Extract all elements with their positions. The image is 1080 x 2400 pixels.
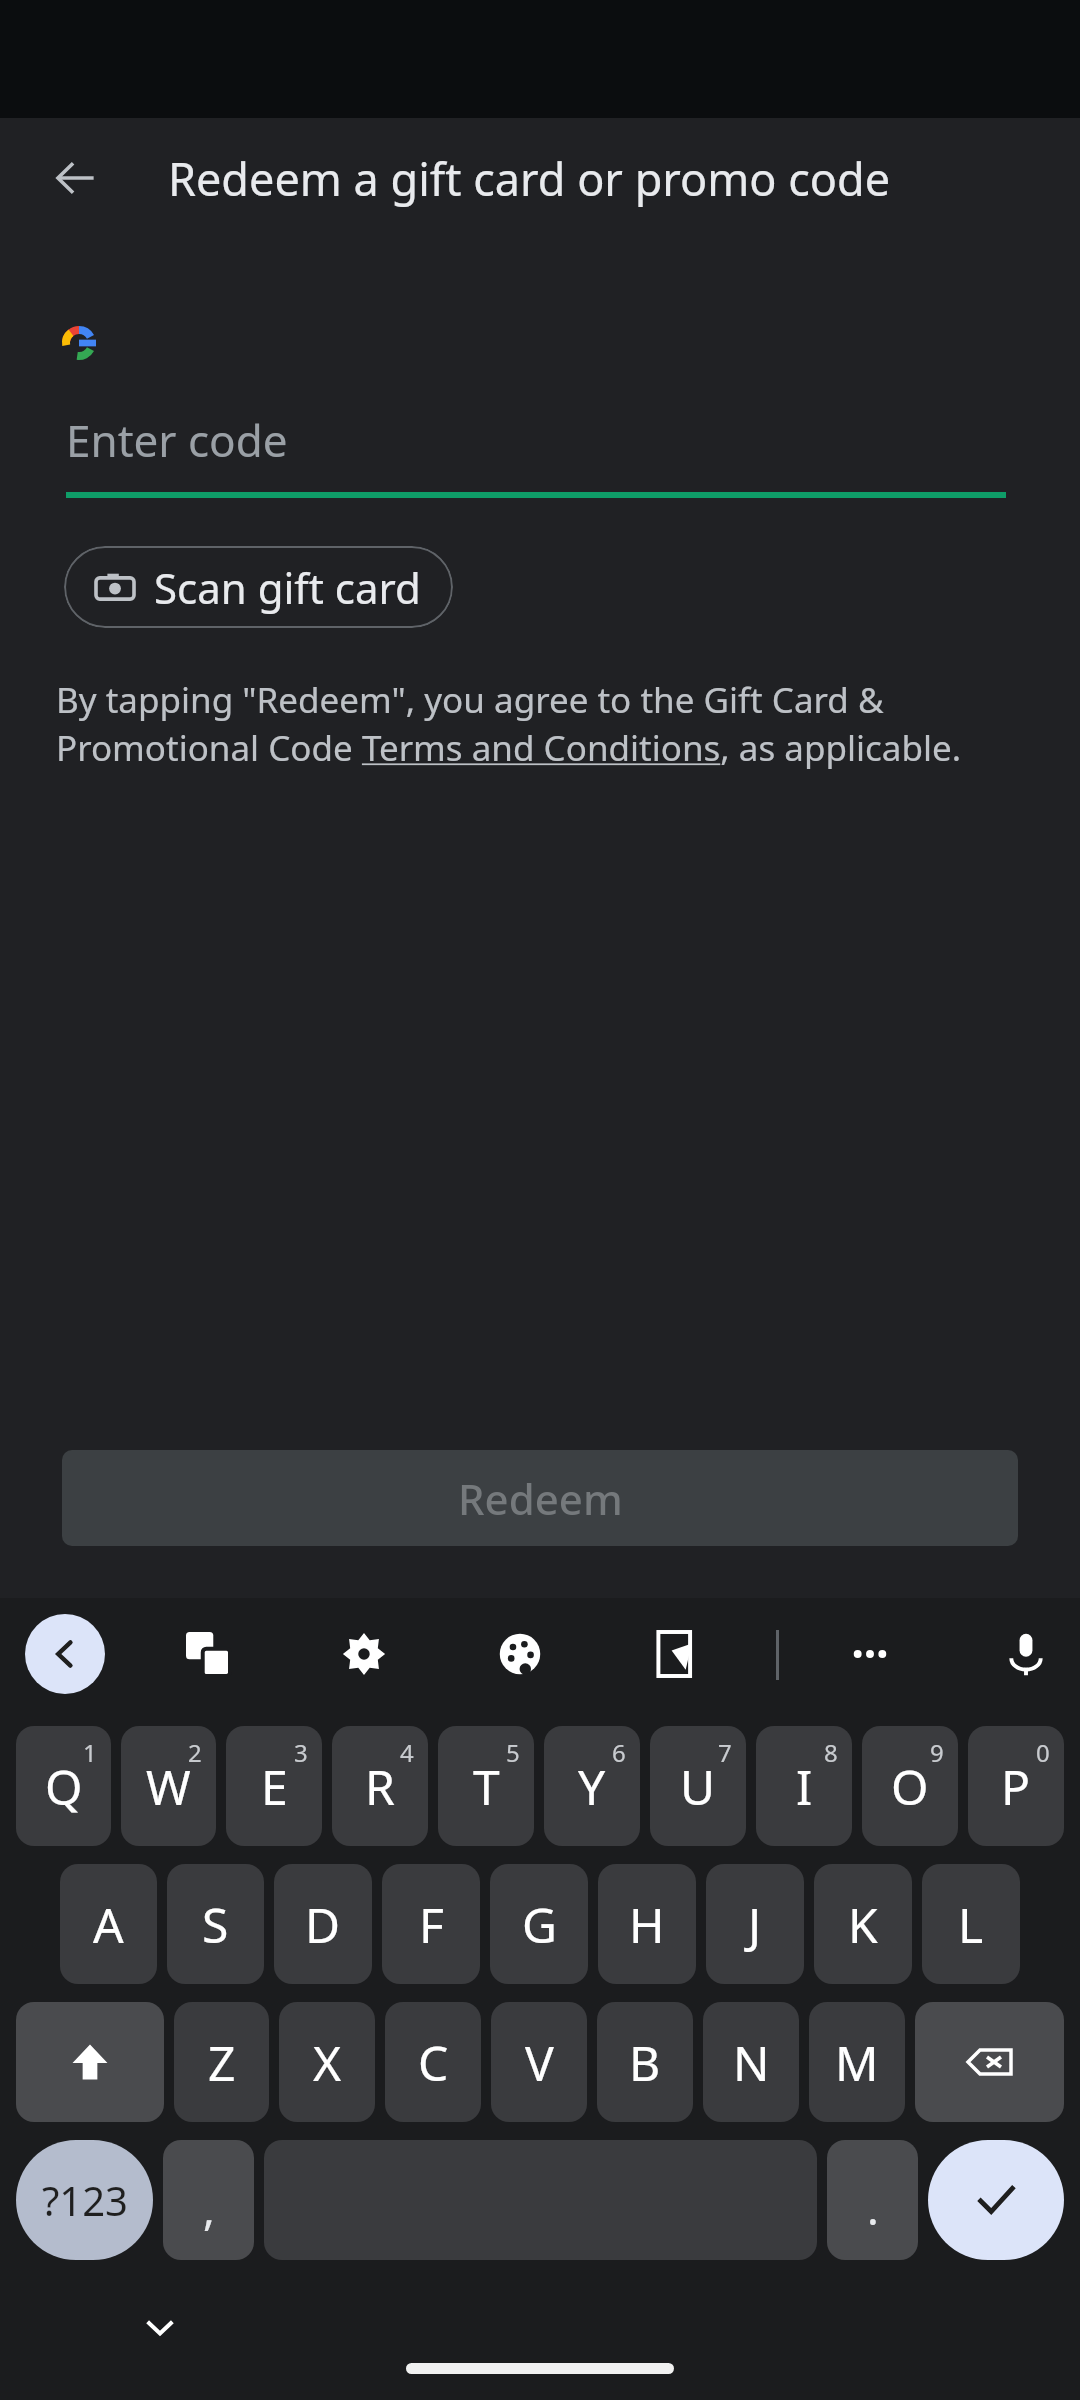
staticText: 7 bbox=[718, 1736, 732, 1769]
button[interactable]: . bbox=[827, 2140, 918, 2260]
staticText: U bbox=[680, 1754, 716, 1819]
button[interactable] bbox=[16, 2002, 164, 2122]
button[interactable]: J bbox=[706, 1864, 804, 1984]
staticText: 4 bbox=[400, 1736, 414, 1769]
staticText: I bbox=[796, 1754, 813, 1819]
button[interactable]: Themes bbox=[480, 1614, 560, 1694]
staticText: Q bbox=[45, 1754, 83, 1819]
button[interactable]: S bbox=[167, 1864, 264, 1984]
button[interactable]: Previous bbox=[25, 1614, 105, 1694]
button[interactable]: R bbox=[332, 1726, 428, 1846]
staticText: Scan gift card bbox=[154, 559, 421, 616]
button[interactable]: A bbox=[60, 1864, 157, 1984]
staticText: D bbox=[305, 1892, 341, 1957]
staticText: O bbox=[891, 1754, 929, 1819]
staticText: , bbox=[203, 2178, 215, 2238]
staticText: L bbox=[958, 1892, 984, 1957]
staticText: Z bbox=[208, 2030, 236, 2095]
button[interactable]: O bbox=[862, 1726, 958, 1846]
staticText: S bbox=[202, 1892, 229, 1957]
staticText: F bbox=[419, 1892, 444, 1957]
staticText: E bbox=[261, 1754, 288, 1819]
staticText: P bbox=[1001, 1754, 1031, 1819]
button[interactable]: M bbox=[809, 2002, 905, 2122]
staticText: B bbox=[629, 2030, 661, 2095]
button[interactable]: W bbox=[121, 1726, 216, 1846]
button[interactable]: H bbox=[598, 1864, 696, 1984]
staticText: 0 bbox=[1036, 1736, 1050, 1769]
staticText: By tapping "Redeem", you agree to the Gi… bbox=[56, 676, 1036, 771]
staticText: X bbox=[313, 2030, 342, 2095]
button[interactable]: Redeem bbox=[62, 1450, 1018, 1546]
staticText: H bbox=[629, 1892, 665, 1957]
button[interactable]: X bbox=[279, 2002, 375, 2122]
staticText: J bbox=[748, 1892, 762, 1957]
button[interactable]: Hide keyboard bbox=[122, 2290, 198, 2366]
staticText: G bbox=[522, 1892, 557, 1957]
button[interactable]: Scan gift card bbox=[64, 546, 453, 628]
button[interactable]: D bbox=[274, 1864, 372, 1984]
staticText: 9 bbox=[930, 1736, 944, 1769]
button[interactable]: E bbox=[226, 1726, 322, 1846]
staticText: Enter code bbox=[66, 410, 288, 470]
button[interactable]: Handwriting bbox=[636, 1614, 716, 1694]
staticText: C bbox=[418, 2030, 449, 2095]
staticText: R bbox=[365, 1754, 395, 1819]
button[interactable]: K bbox=[814, 1864, 912, 1984]
button[interactable]: F bbox=[382, 1864, 480, 1984]
button[interactable]: ?123 bbox=[16, 2140, 153, 2260]
button[interactable]: P bbox=[968, 1726, 1064, 1846]
staticText: 6 bbox=[612, 1736, 626, 1769]
button[interactable]: Back bbox=[38, 140, 114, 216]
button[interactable]: L bbox=[922, 1864, 1020, 1984]
button[interactable] bbox=[915, 2002, 1064, 2122]
button[interactable]: Voice input bbox=[986, 1614, 1066, 1694]
staticText: . bbox=[867, 2178, 879, 2238]
staticText: N bbox=[733, 2030, 770, 2095]
button[interactable]: Y bbox=[544, 1726, 640, 1846]
staticText: Redeem bbox=[458, 1470, 623, 1527]
staticText: 5 bbox=[506, 1736, 520, 1769]
staticText: Redeem a gift card or promo code bbox=[168, 148, 891, 209]
button[interactable]: Q bbox=[16, 1726, 111, 1846]
button[interactable]: T bbox=[438, 1726, 534, 1846]
staticText: K bbox=[848, 1892, 878, 1957]
button[interactable]: U bbox=[650, 1726, 746, 1846]
button[interactable]: Z bbox=[174, 2002, 269, 2122]
staticText: V bbox=[525, 2030, 554, 2095]
button[interactable]: Translate bbox=[168, 1614, 248, 1694]
staticText: M bbox=[835, 2030, 879, 2095]
staticText: 8 bbox=[824, 1736, 838, 1769]
button[interactable]: More options bbox=[830, 1614, 910, 1694]
staticText: Y bbox=[578, 1754, 606, 1819]
button[interactable]: , bbox=[163, 2140, 254, 2260]
staticText: ?123 bbox=[42, 2173, 128, 2227]
button[interactable]: Enter bbox=[928, 2140, 1064, 2260]
staticText: 1 bbox=[83, 1736, 97, 1769]
staticText: 3 bbox=[294, 1736, 308, 1769]
staticText: W bbox=[146, 1754, 191, 1819]
button[interactable]: N bbox=[703, 2002, 799, 2122]
button[interactable]: G bbox=[490, 1864, 588, 1984]
button[interactable]: B bbox=[597, 2002, 693, 2122]
staticText: A bbox=[93, 1892, 124, 1957]
button[interactable]: I bbox=[756, 1726, 852, 1846]
button[interactable]: V bbox=[491, 2002, 587, 2122]
button[interactable]: Settings bbox=[324, 1614, 404, 1694]
staticText: T bbox=[473, 1754, 500, 1819]
staticText: 2 bbox=[188, 1736, 202, 1769]
button[interactable]: C bbox=[385, 2002, 481, 2122]
